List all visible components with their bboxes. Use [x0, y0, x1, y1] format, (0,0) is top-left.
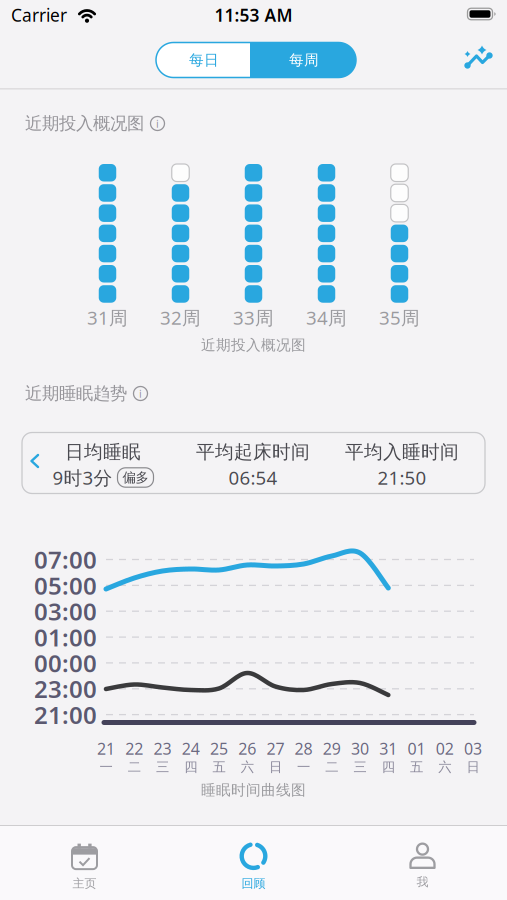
staticText: 34周 [306, 305, 347, 330]
staticText: 平均起床时间 [196, 440, 310, 463]
staticText: 25 [210, 738, 228, 759]
staticText: 22 [125, 738, 143, 759]
staticText: 三 [354, 759, 367, 775]
button[interactable]: 每周 [251, 42, 357, 77]
staticText: 21:50 [377, 465, 426, 490]
staticText: 23 [153, 738, 171, 759]
button[interactable]: 日均睡眠 [22, 432, 485, 493]
staticText: 30 [351, 738, 369, 759]
staticText: 27 [266, 738, 284, 759]
staticText: 01:00 [34, 621, 97, 653]
staticText: 回顾 [241, 876, 265, 891]
staticText: 29 [323, 738, 341, 759]
staticText: 五 [410, 759, 423, 775]
staticText: 31周 [87, 305, 128, 330]
staticText: 日 [269, 759, 282, 775]
staticText: 05:00 [34, 569, 97, 601]
staticText: 二 [325, 759, 338, 775]
staticText: 每日 [189, 51, 219, 69]
staticText: 一 [99, 759, 112, 775]
staticText: 睡眠时间曲线图 [201, 781, 306, 799]
staticText: 平均入睡时间 [345, 440, 459, 463]
staticText: 我 [416, 875, 428, 889]
staticText: 近期投入概况图 [25, 113, 144, 134]
staticText: 一 [297, 759, 310, 775]
staticText: 近期睡眠趋势 [25, 383, 127, 404]
staticText: 二 [128, 759, 141, 775]
staticText: 三 [156, 759, 169, 775]
staticText: 00:00 [34, 647, 97, 679]
button[interactable]: 每日 [157, 42, 251, 77]
button[interactable]: 趋势分析 [456, 39, 496, 79]
staticText: 03:00 [34, 595, 97, 627]
staticText: 9时3分 [52, 465, 112, 490]
staticText: 四 [382, 759, 395, 775]
staticText: 六 [241, 759, 254, 775]
staticText: 五 [212, 759, 225, 775]
staticText: 35周 [379, 305, 420, 330]
staticText: 偏多 [122, 469, 148, 486]
staticText: 23:00 [34, 673, 97, 705]
button[interactable]: 回顾 [193, 835, 313, 897]
staticText: 主页 [72, 876, 96, 891]
button[interactable]: 主页 [24, 835, 144, 897]
staticText: 06:54 [228, 465, 277, 490]
staticText: 28 [295, 738, 313, 759]
staticText: 26 [238, 738, 256, 759]
staticText: 六 [438, 759, 451, 775]
staticText: 07:00 [34, 544, 97, 575]
button[interactable]: 我 [362, 835, 482, 897]
staticText: 每周 [289, 51, 319, 69]
button[interactable]: 信息 [133, 386, 148, 401]
staticText: 24 [182, 738, 200, 759]
staticText: 31 [379, 738, 397, 759]
staticText: Carrier [11, 3, 67, 26]
staticText: 02 [436, 738, 454, 759]
staticText: i [156, 116, 159, 131]
button[interactable]: 信息 [150, 116, 165, 131]
staticText: 33周 [233, 305, 274, 330]
staticText: 四 [184, 759, 197, 775]
staticText: 21:00 [34, 699, 97, 731]
staticText: 日 [466, 759, 479, 775]
staticText: 近期投入概况图 [201, 336, 306, 354]
staticText: 03 [464, 738, 482, 759]
staticText: 11:53 AM [214, 3, 292, 26]
staticText: 21 [97, 738, 115, 759]
staticText: 01 [407, 738, 425, 759]
staticText: 32周 [160, 305, 201, 330]
staticText: 日均睡眠 [65, 440, 141, 463]
staticText: i [139, 386, 142, 401]
